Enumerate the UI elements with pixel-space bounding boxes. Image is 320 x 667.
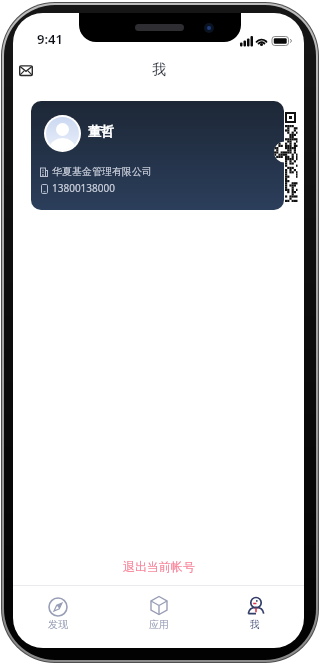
staticText: 我	[152, 61, 166, 79]
button[interactable]: 董哲	[31, 101, 284, 210]
staticText: 应用	[149, 618, 169, 631]
button[interactable]: 退出当前帐号	[13, 559, 304, 574]
button[interactable]: 我	[215, 587, 295, 645]
staticText: 我	[250, 618, 260, 631]
staticText: 华夏基金管理有限公司	[52, 165, 152, 178]
button[interactable]: 发现	[18, 587, 98, 645]
staticText: 9:41	[37, 30, 63, 48]
staticText: 董哲	[88, 123, 114, 139]
staticText: 退出当前帐号	[123, 559, 195, 574]
staticText: 发现	[48, 618, 68, 631]
button[interactable]: 应用	[119, 587, 199, 645]
button[interactable]	[19, 65, 33, 77]
staticText: 13800138000	[52, 181, 115, 195]
